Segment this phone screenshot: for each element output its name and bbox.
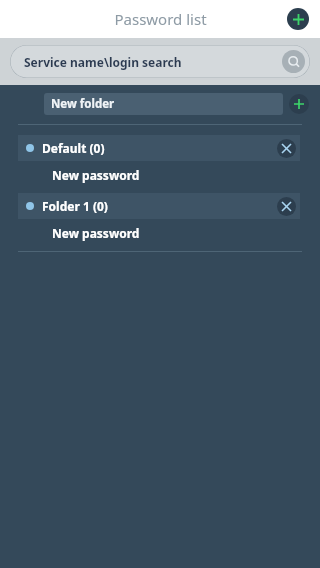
button[interactable]: Add password xyxy=(287,8,309,30)
button[interactable]: Service name\login search xyxy=(10,45,310,78)
button[interactable]: Delete folder xyxy=(277,139,296,158)
staticText: Service name\login search xyxy=(24,54,182,70)
button[interactable]: Folder 1 (0) xyxy=(18,193,300,219)
button[interactable]: Delete folder xyxy=(277,197,296,216)
staticText: New password xyxy=(52,225,140,241)
button[interactable]: New password xyxy=(52,167,140,183)
button[interactable]: Create folder xyxy=(289,94,309,114)
staticText: New folder xyxy=(51,96,115,112)
button[interactable]: Search xyxy=(282,50,305,73)
staticText: New password xyxy=(52,167,140,183)
button[interactable]: New folder xyxy=(44,93,283,115)
staticText: Folder 1 (0) xyxy=(42,198,108,214)
staticText: Default (0) xyxy=(42,140,105,156)
button[interactable]: New password xyxy=(52,225,140,241)
staticText: Password list xyxy=(114,9,207,29)
button[interactable]: Default (0) xyxy=(18,135,300,161)
